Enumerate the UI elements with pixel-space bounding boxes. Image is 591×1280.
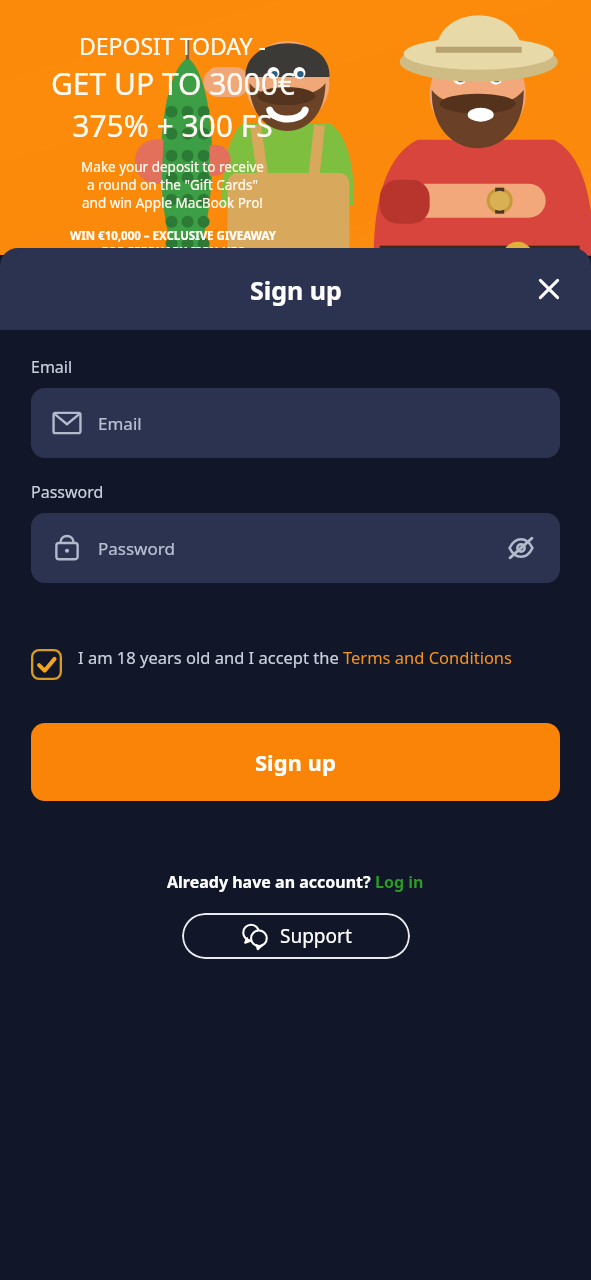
staticText: GET UP TO 3000€ [51,63,295,104]
staticText: Support [280,923,352,949]
staticText: Password [31,481,104,503]
staticText: DEPOSIT TODAY - [79,30,266,61]
staticText: Password [98,537,175,560]
button[interactable]: Show password [504,531,538,565]
staticText: Email [98,412,142,435]
staticText: Make your deposit to receive a round on … [81,158,264,212]
button[interactable]: Already have an account? [31,871,560,893]
staticText: I am 18 years old and I accept the Terms… [78,646,512,668]
staticText: Email [31,356,73,378]
button[interactable]: Support [182,913,410,959]
staticText: 375% + 300 FS [72,105,273,146]
staticText: Log in [375,871,424,893]
staticText: Sign up [250,273,342,307]
button[interactable]: Password [31,513,560,583]
button[interactable]: Sign up [31,723,560,801]
button[interactable]: Email [31,388,560,458]
staticText: Already have an account? [167,871,375,893]
staticText: Sign up [255,747,336,777]
button[interactable]: I am 18 years old and I accept the Terms… [31,649,560,680]
button[interactable]: Close [529,269,569,309]
staticText: WIN €10,000 – EXCLUSIVE GIVEAWAY FOR FEB… [70,228,276,255]
